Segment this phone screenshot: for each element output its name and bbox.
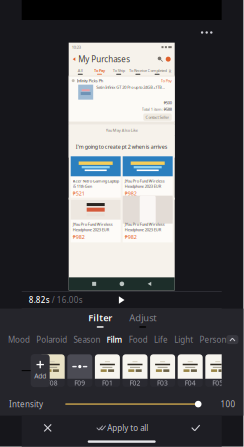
staticText: Person xyxy=(199,334,226,345)
staticText: Mood xyxy=(8,334,30,345)
staticText: Life xyxy=(154,334,168,345)
staticText: Intensity xyxy=(9,399,43,409)
staticText: ₱982 xyxy=(125,233,137,240)
staticText: JYou Pro Fund Wireless Headphone 2023 EU… xyxy=(73,222,113,232)
staticText: ₱521 xyxy=(73,190,85,197)
staticText: Food xyxy=(129,334,148,345)
button[interactable]: Apply to all xyxy=(95,415,148,440)
staticText: ₱500 xyxy=(164,100,172,105)
staticText: F04 xyxy=(185,378,196,387)
staticText: My Purchases xyxy=(78,54,130,64)
staticText: JYou Pro Fund Wireless Headphone 2023 EU… xyxy=(125,222,165,232)
staticText: 100 xyxy=(220,399,235,409)
button[interactable]: Season xyxy=(73,331,100,349)
staticText: Film xyxy=(107,334,123,345)
staticText: F08 xyxy=(47,378,58,387)
staticText: F03 xyxy=(157,378,168,387)
staticText: To Pay xyxy=(161,78,172,83)
staticText: F09 xyxy=(74,378,85,387)
staticText: JYou Pro Fund Wireless Headphone 2023 EU… xyxy=(125,178,165,189)
staticText: Season xyxy=(73,334,100,345)
staticText: Acer Nitro Gaming Laptop i5 11th Gen xyxy=(73,178,119,189)
staticText: F02 xyxy=(129,378,140,387)
button[interactable]: Play xyxy=(112,292,132,308)
button[interactable]: More xyxy=(195,23,219,41)
staticText: Total 1 item: xyxy=(142,106,164,112)
button[interactable]: F08 xyxy=(40,354,65,387)
button[interactable]: F03 xyxy=(150,354,175,387)
staticText: Adjust xyxy=(129,311,156,324)
staticText: You May Also Like xyxy=(106,127,138,133)
button[interactable]: F05 xyxy=(205,354,230,387)
staticText: Filter xyxy=(88,311,112,324)
staticText: To Pay xyxy=(94,68,105,73)
button[interactable]: Done xyxy=(170,415,222,440)
button[interactable]: Person xyxy=(199,331,226,349)
button[interactable]: F02 xyxy=(122,354,147,387)
staticText: Apply to all xyxy=(107,423,148,433)
button[interactable]: F01 xyxy=(95,354,120,387)
staticText: F01 xyxy=(102,378,113,387)
button[interactable]: Filter xyxy=(79,309,121,331)
button[interactable]: Adjust xyxy=(121,309,164,331)
staticText: Completed xyxy=(148,68,167,73)
staticText: / 16.00s xyxy=(50,295,83,305)
staticText: Add xyxy=(34,371,46,380)
button[interactable]: Life xyxy=(154,331,168,349)
staticText: R xyxy=(169,68,171,74)
staticText: Contact Seller xyxy=(145,114,169,120)
staticText: F05 xyxy=(212,378,223,387)
staticText: 10:23 xyxy=(72,44,81,50)
button[interactable]: Cancel xyxy=(22,415,74,440)
staticText: I'm going to create pt 2 when is arrives xyxy=(76,143,168,150)
button[interactable]: F09 xyxy=(67,354,92,387)
button[interactable]: Food xyxy=(129,331,148,349)
staticText: ₱588 xyxy=(164,106,172,112)
button[interactable]: Light xyxy=(174,331,193,349)
button[interactable]: Add xyxy=(31,354,50,387)
button[interactable]: Mood xyxy=(8,331,30,349)
staticText: Light xyxy=(174,334,193,345)
button[interactable]: F04 xyxy=(178,354,203,387)
staticText: Polaroid xyxy=(36,334,67,345)
button[interactable]: Collapse categories xyxy=(226,335,238,344)
staticText: ₱982 xyxy=(73,233,85,240)
staticText: 8.82s xyxy=(29,295,50,305)
staticText: ₱982 xyxy=(125,190,137,197)
button[interactable]: Polaroid xyxy=(36,331,67,349)
staticText: To Receive xyxy=(129,68,147,73)
button[interactable]: Film xyxy=(107,331,123,349)
staticText: All xyxy=(78,68,83,73)
staticText: To Ship xyxy=(113,68,125,73)
staticText: Infinity Picks Ph xyxy=(77,78,103,83)
staticText: Satin Infinix GT 20 Pro up to 24GB+1TB..… xyxy=(96,85,165,90)
